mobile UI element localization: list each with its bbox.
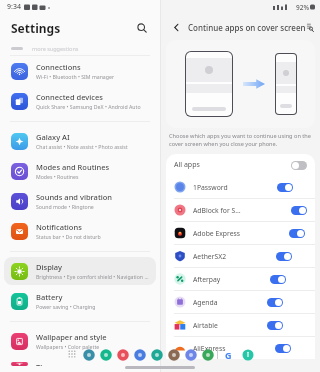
button[interactable]: App 4 <box>132 347 147 362</box>
button[interactable]: Connections <box>4 57 156 85</box>
staticText: Agenda <box>193 298 218 307</box>
button[interactable]: AdBlock for Samsung Internet <box>166 199 315 221</box>
button[interactable]: App 2 <box>98 347 113 362</box>
button[interactable]: On <box>277 183 293 192</box>
button[interactable]: Apps <box>65 347 79 361</box>
staticText: Display <box>36 262 63 272</box>
button[interactable]: Display <box>4 257 156 285</box>
button[interactable]: Search settings <box>132 18 152 38</box>
button[interactable]: Afterpay <box>166 268 315 290</box>
button[interactable]: Themes <box>4 357 156 371</box>
staticText: Power saving • Charging <box>36 303 96 310</box>
button[interactable]: Downloads <box>240 347 255 362</box>
button[interactable]: Back <box>167 18 185 36</box>
button[interactable]: App 5 <box>149 347 164 362</box>
staticText: Connections <box>36 62 81 72</box>
staticText: Themes <box>36 362 65 366</box>
staticText: Adobe Express <box>193 229 240 238</box>
button[interactable]: Sounds and vibration <box>4 187 156 215</box>
staticText: AliExpress <box>193 344 226 353</box>
button[interactable]: AetherSX2 <box>166 245 315 267</box>
button[interactable]: All apps <box>166 154 315 176</box>
button[interactable]: On <box>267 298 283 307</box>
staticText: Wi-Fi • Bluetooth • SIM manager <box>36 73 115 80</box>
button[interactable]: On <box>267 321 283 330</box>
button[interactable]: On <box>291 206 307 215</box>
staticText: Choose which apps you want to continue u… <box>169 132 312 148</box>
button[interactable]: On <box>289 229 305 238</box>
staticText: Sound mode • Ringtone <box>36 203 94 210</box>
button[interactable]: App 1 <box>81 347 96 362</box>
staticText: 92% <box>296 3 309 12</box>
staticText: AdBlock for Samsung Internet <box>193 206 242 215</box>
button[interactable]: Google <box>221 347 236 362</box>
staticText: 1Password <box>193 183 228 192</box>
button[interactable]: App 7 <box>183 347 198 362</box>
button[interactable]: AliExpress <box>166 337 315 359</box>
staticText: AetherSX2 <box>193 252 227 261</box>
staticText: Status bar • Do not disturb <box>36 233 101 240</box>
staticText: Modes • Routines <box>36 173 79 180</box>
button[interactable]: 1Password <box>166 176 315 198</box>
staticText: Brightness • Eye comfort shield • Naviga… <box>36 273 150 280</box>
button[interactable]: Off <box>291 161 307 170</box>
staticText: Galaxy AI <box>36 132 70 142</box>
staticText: Wallpaper and style <box>36 332 107 342</box>
button[interactable]: Battery <box>4 287 156 315</box>
staticText: All apps <box>174 160 200 170</box>
staticText: Sounds and vibration <box>36 192 113 202</box>
staticText: 9:34 <box>7 2 21 12</box>
staticText: Continue apps on cover screen <box>188 22 306 33</box>
button[interactable]: Wallpaper and style <box>4 327 156 355</box>
button[interactable]: On <box>276 252 292 261</box>
button[interactable]: Modes and Routines <box>4 157 156 185</box>
button[interactable]: App 6 <box>166 347 181 362</box>
staticText: Airtable <box>193 321 218 330</box>
staticText: Battery <box>36 292 63 302</box>
button[interactable]: Connected devices <box>4 87 156 115</box>
button[interactable]: App 8 <box>200 347 215 362</box>
staticText: Quick Share • Samsung DeX • Android Auto <box>36 103 141 110</box>
staticText: more suggestions <box>32 45 79 52</box>
staticText: Connected devices <box>36 92 103 102</box>
button[interactable]: Airtable <box>166 314 315 336</box>
button[interactable]: On <box>275 344 291 353</box>
staticText: Chat assist • Note assist • Photo assist <box>36 143 128 150</box>
button[interactable]: Notifications <box>4 217 156 245</box>
staticText: G <box>225 349 232 361</box>
button[interactable]: Agenda <box>166 291 315 313</box>
button[interactable]: App 3 <box>115 347 130 362</box>
staticText: Afterpay <box>193 275 221 284</box>
button[interactable]: Search <box>306 18 314 36</box>
staticText: Wallpapers • Color palette <box>36 343 100 350</box>
button[interactable]: Adobe Express <box>166 222 315 244</box>
staticText: Notifications <box>36 222 82 232</box>
staticText: Settings <box>11 20 61 36</box>
button[interactable]: Galaxy AI <box>4 127 156 155</box>
staticText: Modes and Routines <box>36 162 110 172</box>
button[interactable]: On <box>270 275 286 284</box>
